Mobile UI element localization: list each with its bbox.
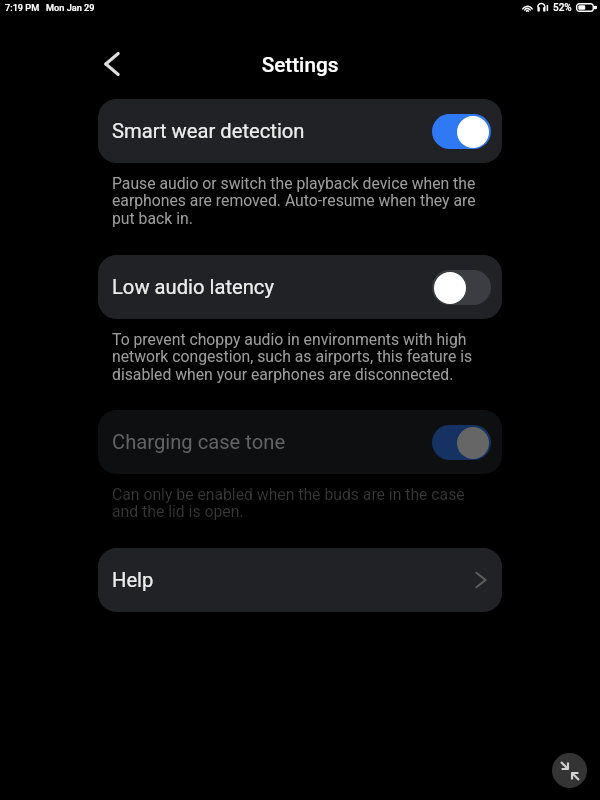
button[interactable]: Low audio latency xyxy=(98,255,502,319)
staticText: Smart wear detection xyxy=(112,119,305,143)
button[interactable]: Help xyxy=(98,548,502,612)
staticText: Mon Jan 29 xyxy=(46,2,95,13)
staticText: Help xyxy=(112,568,154,592)
button[interactable]: Toggle xyxy=(432,425,491,460)
staticText: Can only be enabled when the buds are in… xyxy=(112,485,494,521)
button[interactable]: Back xyxy=(94,46,130,82)
staticText: 52% xyxy=(553,2,572,14)
staticText: 7:19 PM xyxy=(5,2,40,13)
button[interactable]: Toggle xyxy=(432,270,491,305)
button[interactable]: Toggle xyxy=(432,114,491,149)
staticText: To prevent choppy audio in environments … xyxy=(112,330,494,384)
staticText: Low audio latency xyxy=(112,275,274,299)
button[interactable]: Charging case tone xyxy=(98,410,502,474)
staticText: Charging case tone xyxy=(112,430,286,454)
button[interactable]: Collapse xyxy=(552,753,587,788)
button[interactable]: Smart wear detection xyxy=(98,99,502,163)
staticText: Settings xyxy=(0,53,600,77)
staticText: Pause audio or switch the playback devic… xyxy=(112,174,494,228)
